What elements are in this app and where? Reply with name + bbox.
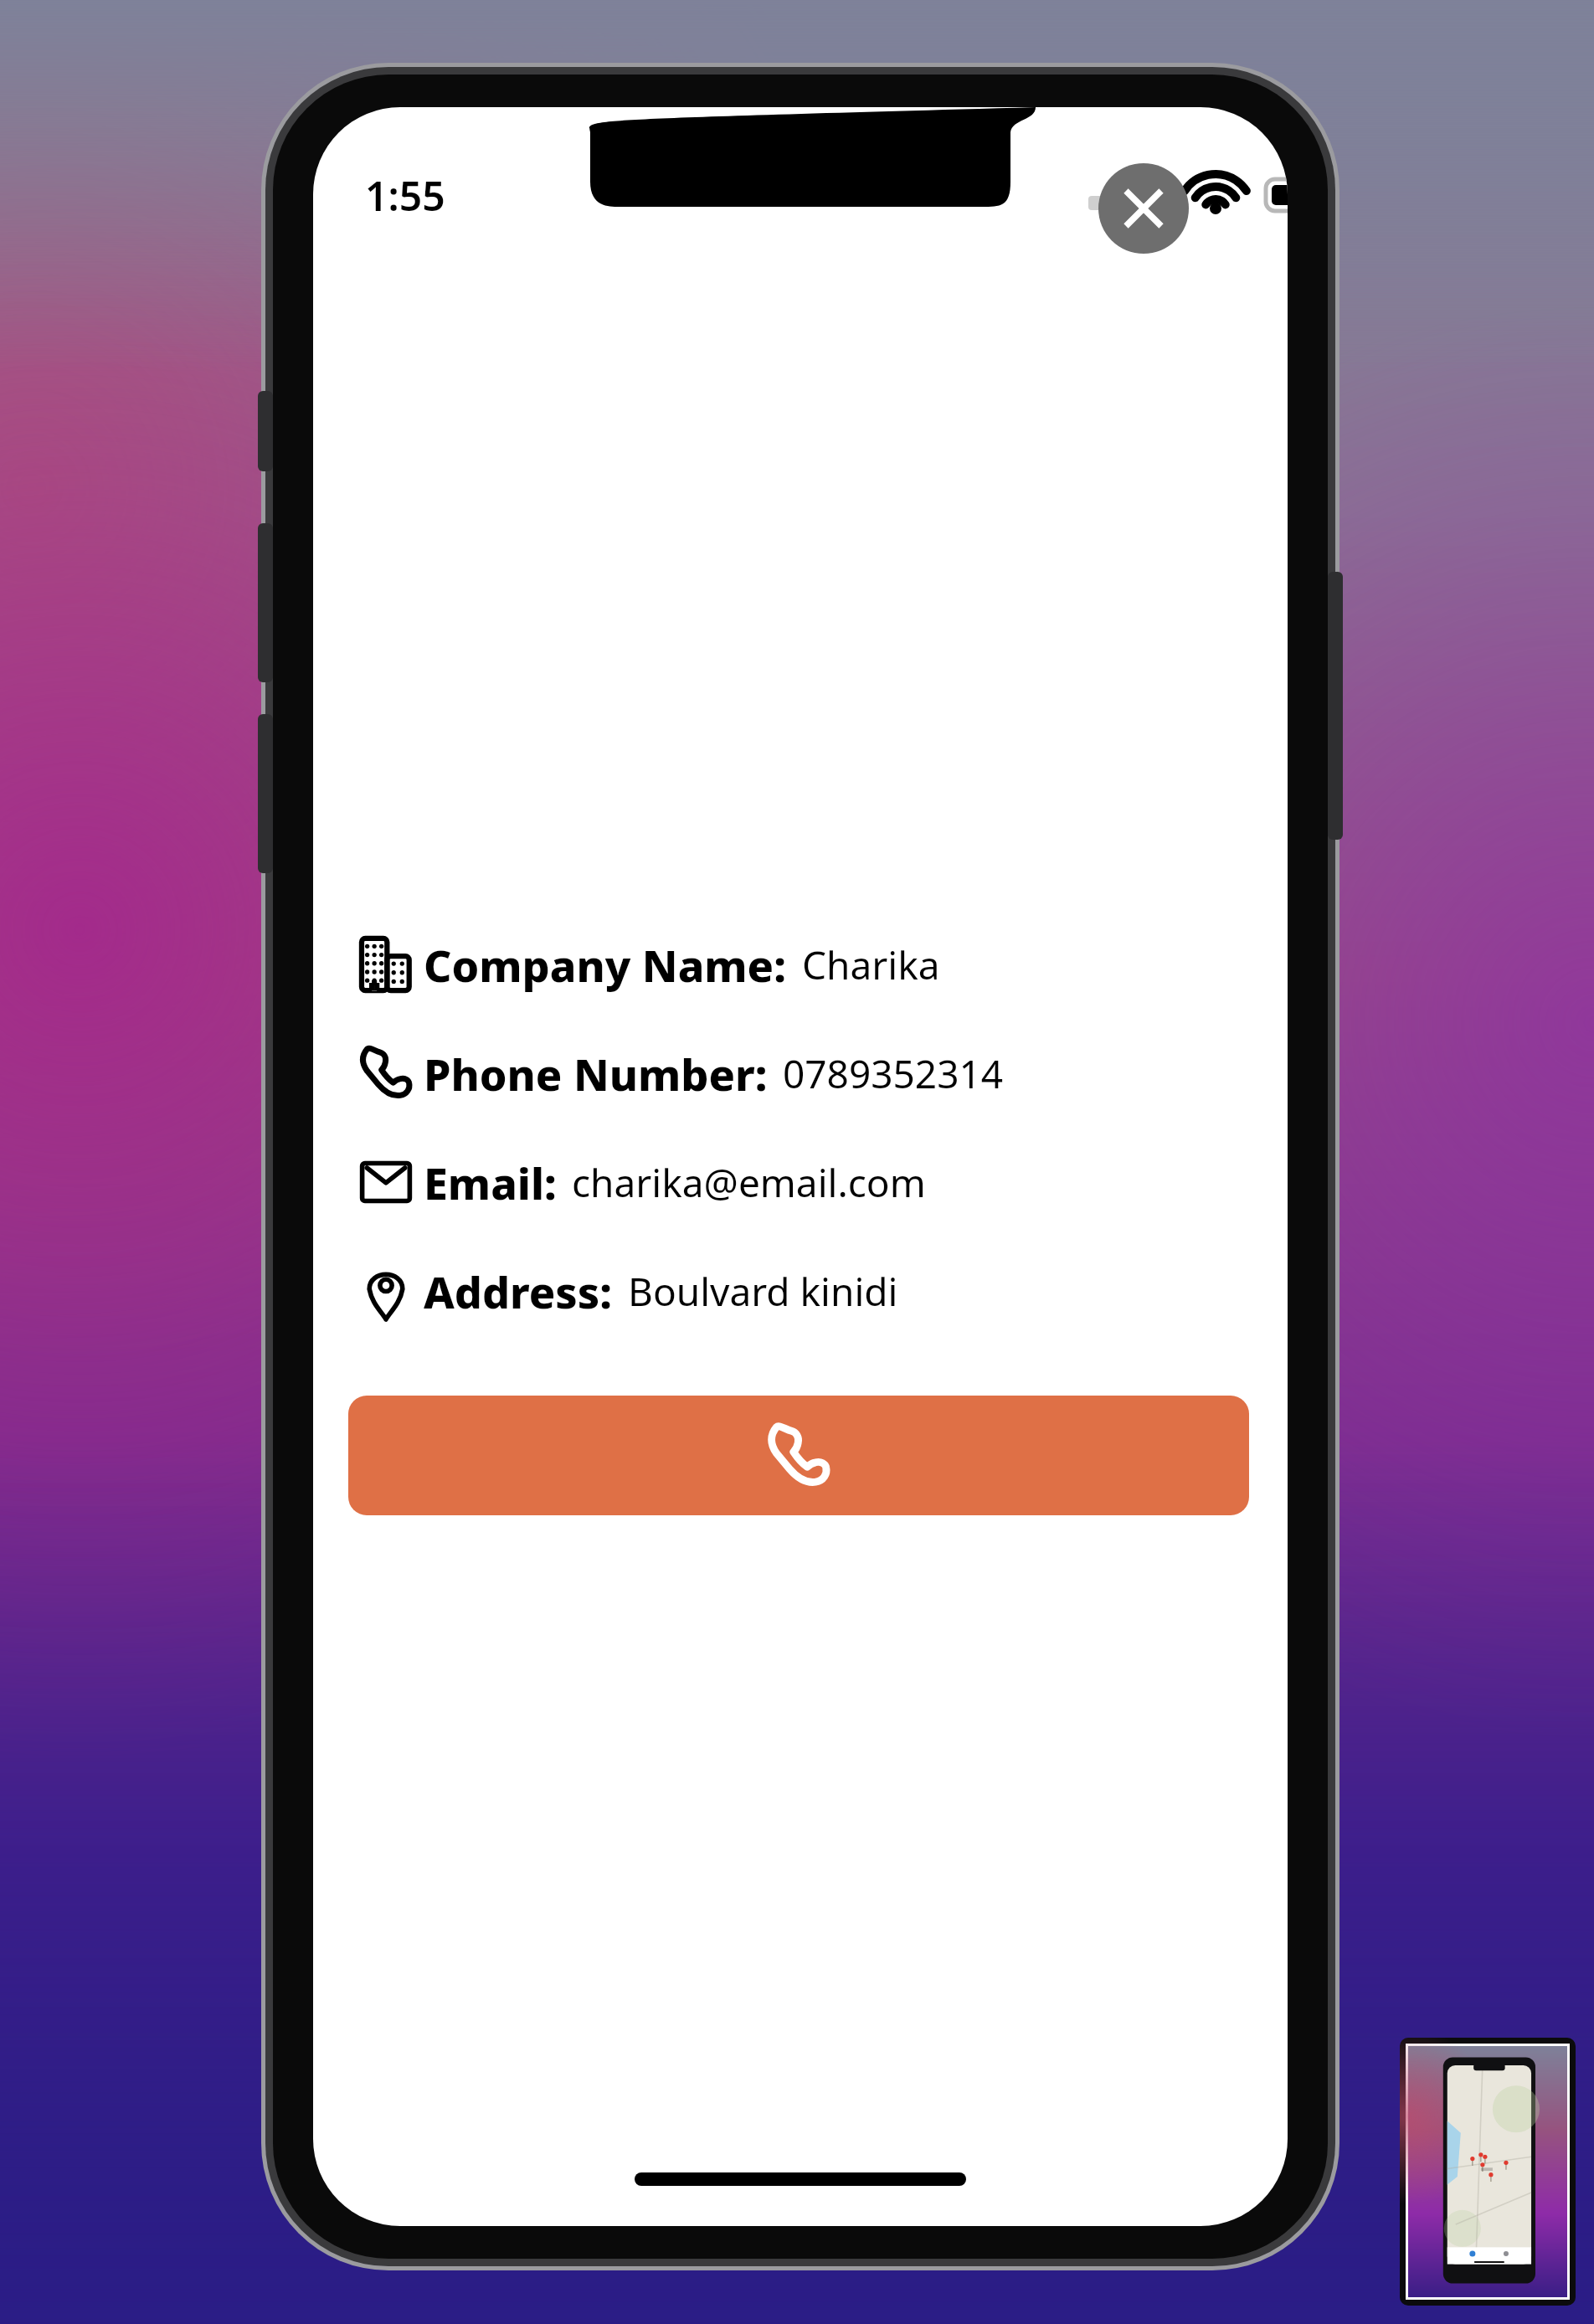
button[interactable]: Close — [1098, 163, 1189, 254]
staticText: Phone Number: — [424, 1044, 768, 1103]
button[interactable]: Email: — [348, 1137, 1252, 1227]
button[interactable]: Address: — [348, 1246, 1252, 1336]
staticText: Charika — [802, 938, 940, 991]
staticText: 0789352314 — [783, 1047, 1004, 1100]
staticText: Address: — [424, 1262, 613, 1321]
staticText: Company Name: — [424, 935, 787, 995]
button[interactable] — [1408, 2046, 1567, 2297]
button[interactable]: Call — [348, 1396, 1249, 1515]
staticText: Email: — [424, 1153, 557, 1212]
staticText: 1:55 — [365, 168, 445, 223]
button[interactable]: Phone Number: — [348, 1028, 1252, 1118]
button[interactable]: Company Name: — [348, 919, 1252, 1010]
staticText: charika@email.com — [572, 1156, 926, 1209]
staticText: Boulvard kinidi — [628, 1265, 898, 1318]
